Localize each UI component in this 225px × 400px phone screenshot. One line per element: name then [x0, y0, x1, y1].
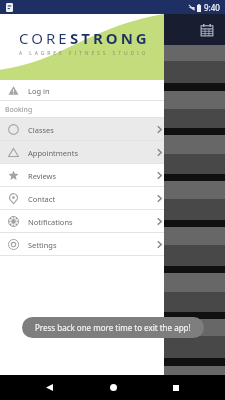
button[interactable]: Calendar	[200, 23, 214, 37]
button[interactable]: Appointments	[0, 141, 164, 164]
staticText: Settings	[28, 240, 57, 250]
staticText: Appointments	[28, 148, 79, 158]
button[interactable]: Classes	[0, 118, 164, 141]
button[interactable]: Reviews	[0, 164, 164, 187]
button[interactable]: Notifications	[0, 210, 164, 233]
staticText: Notifications	[28, 217, 73, 227]
staticText: 9:40	[204, 2, 220, 13]
staticText: Press back one more time to exit the app…	[35, 322, 191, 333]
button[interactable]: Log in	[0, 80, 164, 101]
button[interactable]: Home	[98, 375, 128, 400]
button[interactable]: Contact	[0, 187, 164, 210]
button[interactable]: Recents	[161, 375, 191, 400]
button[interactable]: Back	[34, 375, 64, 400]
staticText: STRONG	[70, 28, 150, 48]
staticText: Classes	[28, 125, 54, 135]
staticText: A LAGREE FITNESS STUDIO	[19, 50, 149, 57]
staticText: Contact	[28, 194, 56, 204]
staticText: CORE	[19, 28, 70, 48]
button[interactable]: Settings	[0, 233, 164, 256]
staticText: Booking	[5, 105, 33, 115]
staticText: Log in	[28, 86, 50, 96]
staticText: Reviews	[28, 171, 57, 181]
